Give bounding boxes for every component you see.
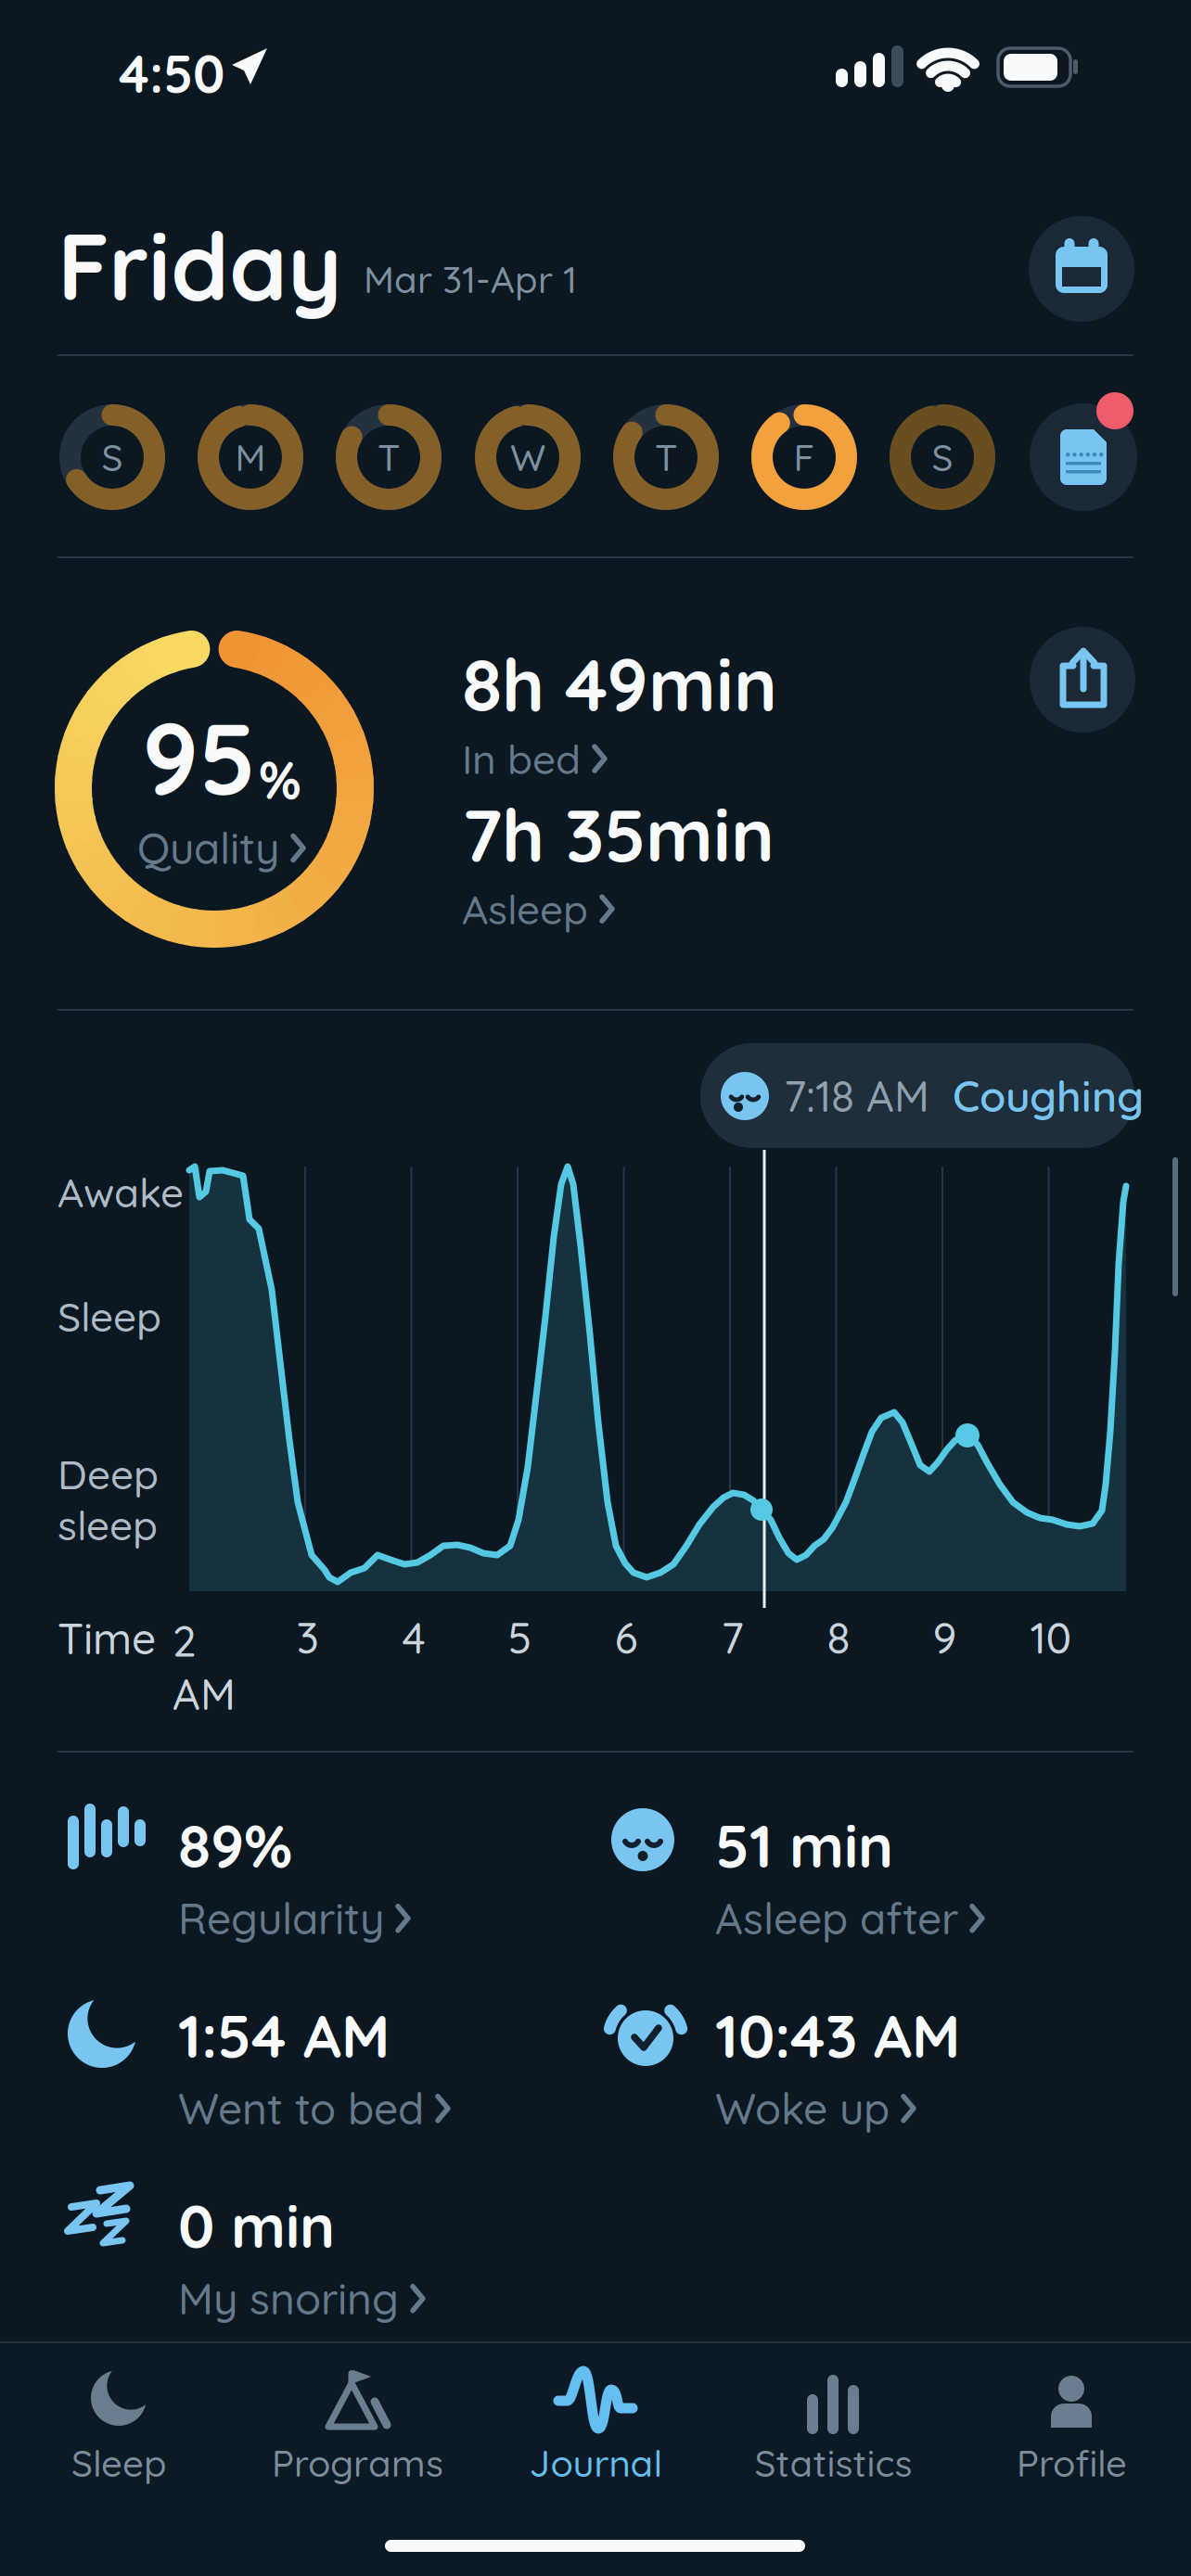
staticText: Friday	[58, 208, 342, 324]
staticText: T	[655, 434, 677, 480]
button[interactable]: Journal	[477, 2370, 715, 2509]
staticText: Profile	[1017, 2440, 1127, 2486]
staticText: 7	[721, 1611, 743, 1664]
button[interactable]	[1030, 627, 1135, 733]
staticText: Deep sleep	[58, 1448, 159, 1550]
button[interactable]: S	[890, 404, 995, 510]
staticText: Coughing	[953, 1069, 1144, 1122]
staticText: T	[378, 434, 400, 480]
staticText: Statistics	[755, 2440, 912, 2486]
staticText: %	[259, 747, 301, 812]
button[interactable]: 51 min	[611, 1803, 1168, 1951]
button[interactable]: Statistics	[714, 2370, 953, 2509]
staticText: 95	[142, 694, 256, 820]
staticText: 0 min	[178, 2188, 335, 2263]
button[interactable]: F	[751, 404, 857, 510]
button[interactable]: 0 min	[65, 2183, 584, 2331]
staticText: 7h 35min	[462, 788, 775, 880]
staticText: Woke up	[715, 2082, 890, 2135]
button[interactable]: M	[198, 404, 303, 510]
staticText: Journal	[529, 2440, 663, 2486]
button[interactable]: Programs	[238, 2370, 477, 2509]
staticText: In bed	[462, 733, 581, 784]
staticText: Quality	[137, 821, 279, 875]
staticText: W	[510, 434, 545, 480]
staticText: 7:18 AM	[784, 1069, 929, 1122]
staticText: 10:43 AM	[715, 1998, 960, 2072]
staticText: S	[932, 434, 953, 480]
staticText: 89%	[178, 1808, 292, 1882]
staticText: Time	[58, 1612, 156, 1665]
button[interactable]: T	[336, 404, 442, 510]
button[interactable]: S	[59, 404, 165, 510]
button[interactable]: Sleep	[0, 2370, 238, 2509]
staticText: 9	[933, 1611, 957, 1664]
staticText: 51 min	[715, 1808, 893, 1882]
staticText: F	[794, 434, 815, 480]
button[interactable]: W	[475, 404, 581, 510]
button[interactable]: 95	[55, 629, 374, 948]
staticText: 1:54 AM	[178, 1998, 390, 2072]
staticText: M	[235, 434, 266, 480]
staticText: Sleep	[71, 2440, 167, 2486]
staticText: Asleep	[462, 883, 588, 934]
staticText: 10	[1030, 1611, 1072, 1664]
staticText: S	[102, 434, 123, 480]
staticText: 4:50	[119, 41, 224, 106]
button[interactable]: 1:54 AM	[65, 1993, 584, 2141]
staticText: My snoring	[178, 2272, 399, 2325]
staticText: 5	[508, 1611, 532, 1664]
button[interactable]	[1029, 216, 1134, 322]
button[interactable]	[1030, 403, 1137, 511]
button[interactable]: 10:43 AM	[611, 1993, 1168, 2141]
button[interactable]: 7h 35min	[462, 788, 775, 934]
button[interactable]: 8h 49min	[462, 638, 777, 784]
staticText: 8h 49min	[462, 638, 777, 729]
button[interactable]: T	[613, 404, 719, 510]
staticText: Went to bed	[178, 2082, 424, 2135]
staticText: 4	[402, 1611, 425, 1664]
button[interactable]: Profile	[953, 2370, 1191, 2509]
staticText: 6	[615, 1611, 638, 1664]
staticText: Asleep after	[715, 1892, 958, 1945]
staticText: Awake	[58, 1167, 184, 1218]
staticText: Sleep	[58, 1291, 161, 1342]
staticText: Regularity	[178, 1892, 384, 1945]
staticText: 8	[827, 1611, 850, 1664]
button[interactable]: 89%	[65, 1803, 584, 1951]
staticText: Programs	[272, 2440, 443, 2486]
staticText: Mar 31-Apr 1	[364, 256, 577, 302]
staticText: 2 AM	[173, 1614, 236, 1721]
staticText: 3	[296, 1611, 319, 1664]
